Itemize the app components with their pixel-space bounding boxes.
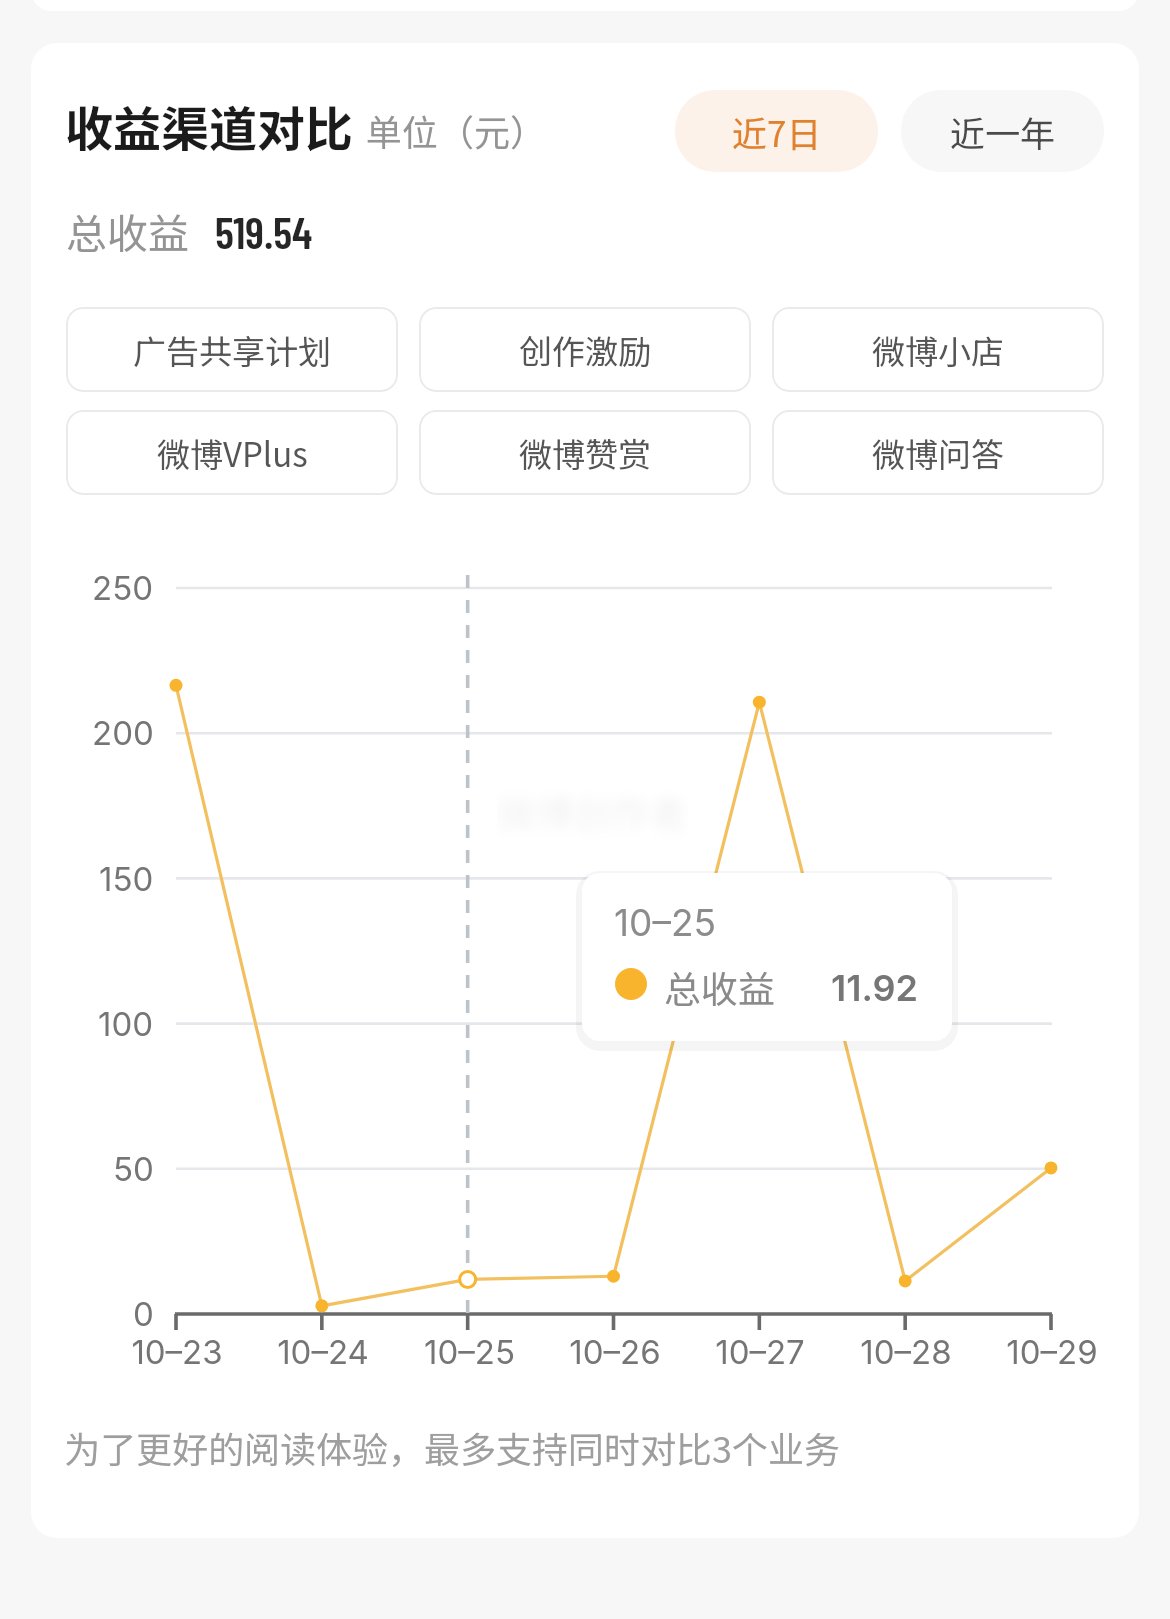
staticText: 单位（元）: [366, 104, 547, 156]
staticText: 10–29: [1006, 1332, 1098, 1372]
button[interactable]: 微博赞赏: [419, 410, 751, 495]
staticText: 创作激励: [519, 326, 651, 374]
button[interactable]: 收益趋势折线图: [151, 560, 1071, 1350]
staticText: 100: [98, 1004, 154, 1044]
button[interactable]: 近7日: [675, 90, 878, 172]
staticText: 收益渠道对比: [65, 91, 354, 161]
staticText: 11.92: [831, 966, 918, 1010]
staticText: 50: [113, 1149, 154, 1189]
staticText: 10–28: [860, 1332, 952, 1372]
staticText: 150: [99, 859, 154, 899]
staticText: 10–25: [424, 1332, 515, 1372]
staticText: 微博VPlus: [157, 429, 308, 477]
staticText: 200: [92, 713, 154, 753]
staticText: 519.54: [215, 205, 313, 258]
staticText: 250: [92, 568, 154, 608]
staticText: 总收益: [664, 960, 775, 1014]
staticText: 10–26: [569, 1332, 661, 1372]
staticText: 为了更好的阅读体验，最多支持同时对比3个业务: [64, 1421, 840, 1473]
button[interactable]: 微博小店: [772, 307, 1104, 392]
button[interactable]: 微博VPlus: [66, 410, 398, 495]
staticText: 10–27: [715, 1332, 805, 1372]
button[interactable]: 近一年: [901, 90, 1104, 172]
staticText: 总收益: [66, 201, 189, 260]
button[interactable]: 创作激励: [419, 307, 751, 392]
staticText: 0: [133, 1294, 154, 1334]
staticText: 广告共享计划: [133, 326, 331, 374]
staticText: 近一年: [950, 106, 1056, 157]
staticText: 微博问答: [872, 429, 1004, 477]
staticText: 微博小店: [872, 326, 1004, 374]
button[interactable]: 微博问答: [772, 410, 1104, 495]
staticText: 10–23: [131, 1332, 223, 1372]
staticText: 微博赞赏: [519, 429, 651, 477]
staticText: 10–24: [277, 1332, 369, 1372]
button[interactable]: 广告共享计划: [66, 307, 398, 392]
staticText: 10–25: [614, 900, 716, 945]
staticText: 近7日: [732, 106, 822, 157]
